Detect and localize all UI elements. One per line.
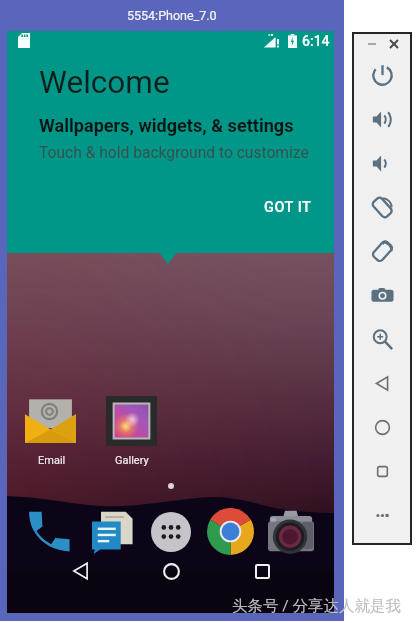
button[interactable]: Gallery <box>99 395 163 465</box>
button[interactable]: Camera <box>265 507 317 559</box>
button[interactable]: Zoom <box>360 317 404 361</box>
button[interactable]: Power <box>360 53 404 97</box>
button[interactable]: Messages <box>87 507 139 559</box>
button[interactable]: Minimize <box>363 35 380 52</box>
button[interactable]: All apps <box>145 507 197 559</box>
button[interactable]: Screenshot <box>360 273 404 317</box>
staticText: Gallery <box>115 454 149 467</box>
button[interactable]: Back <box>360 361 404 405</box>
button[interactable]: Rotate left <box>360 185 404 229</box>
staticText: GOT IT <box>264 199 312 216</box>
button[interactable]: Home <box>360 405 404 449</box>
button[interactable]: Email <box>19 395 83 465</box>
button[interactable]: Overview <box>360 449 404 493</box>
staticText: 6:14 <box>302 33 330 49</box>
button[interactable]: Back <box>60 551 100 591</box>
button[interactable]: More <box>360 493 404 537</box>
button[interactable]: Phone <box>21 507 73 559</box>
staticText: Welcome <box>39 64 170 101</box>
staticText: Touch & hold background to customize <box>39 144 309 162</box>
button[interactable]: Chrome <box>205 507 257 559</box>
button[interactable]: Recents <box>242 551 282 591</box>
button[interactable]: Volume up <box>360 97 404 141</box>
staticText: Email <box>38 454 66 467</box>
staticText: Wallpapers, widgets, & settings <box>39 115 294 136</box>
button[interactable]: GOT IT <box>257 192 319 223</box>
button[interactable]: Close <box>385 35 402 52</box>
button[interactable]: Rotate right <box>360 229 404 273</box>
staticText: 5554:Phone_7.0 <box>127 8 217 23</box>
button[interactable]: Home <box>151 551 191 591</box>
button[interactable]: Volume down <box>360 141 404 185</box>
staticText: 头条号 / 分享达人就是我 <box>232 596 402 616</box>
